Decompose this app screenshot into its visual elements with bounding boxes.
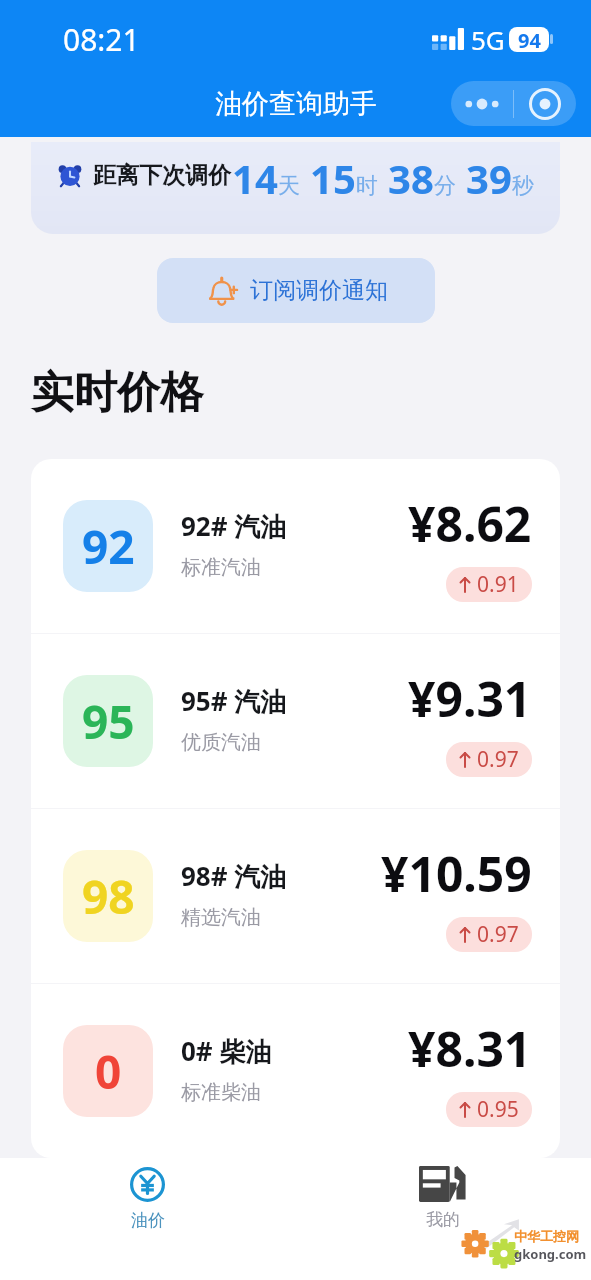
staticText: 39	[466, 151, 512, 205]
staticText: 时	[356, 172, 378, 200]
staticText: 我的	[426, 1209, 460, 1230]
button[interactable]: 0	[31, 984, 560, 1158]
staticText: ¥8.31	[408, 1016, 532, 1081]
button[interactable]: 92	[31, 459, 560, 633]
staticText: 14	[232, 151, 278, 205]
button[interactable]: 油价	[129, 1166, 166, 1231]
staticText: ¥10.59	[381, 841, 532, 906]
staticText: 0	[95, 1040, 122, 1103]
staticText: ¥9.31	[408, 666, 532, 731]
staticText: 98# 汽油	[181, 858, 287, 894]
staticText: 94	[518, 27, 541, 52]
staticText: 0.95	[477, 1095, 519, 1124]
button[interactable]: 95	[31, 634, 560, 808]
staticText: 98	[82, 865, 135, 928]
staticText: 分	[434, 172, 456, 200]
staticText: 优质汽油	[181, 730, 261, 755]
staticText: ¥8.62	[408, 491, 532, 556]
button[interactable]: 订阅调价通知	[157, 258, 435, 323]
staticText: 精选汽油	[181, 905, 261, 930]
staticText: 5G	[471, 22, 505, 57]
staticText: 92	[82, 515, 135, 578]
staticText: 订阅调价通知	[250, 276, 388, 305]
button[interactable]: Close mini program	[514, 81, 576, 126]
staticText: 95# 汽油	[181, 683, 287, 719]
staticText: 油价	[131, 1210, 165, 1231]
staticText: 0.91	[477, 570, 519, 599]
staticText: 标准柴油	[181, 1080, 261, 1105]
staticText: 实时价格	[31, 366, 203, 420]
staticText: 08:21	[63, 19, 140, 60]
staticText: 92# 汽油	[181, 508, 287, 544]
staticText: 95	[82, 690, 135, 753]
button[interactable]: More options	[451, 81, 513, 126]
staticText: 0.97	[477, 920, 519, 949]
staticText: 0.97	[477, 745, 519, 774]
staticText: 中华工控网	[514, 1228, 579, 1244]
staticText: 0# 柴油	[181, 1033, 272, 1069]
staticText: 标准汽油	[181, 555, 261, 580]
button[interactable]: 98	[31, 809, 560, 983]
staticText: 油价查询助手	[215, 87, 377, 121]
button[interactable]: 我的	[419, 1166, 467, 1230]
staticText: 距离下次调价	[93, 161, 231, 190]
staticText: 15	[310, 151, 356, 205]
staticText: 38	[388, 151, 434, 205]
staticText: gkong.com	[514, 1245, 587, 1263]
staticText: 天	[278, 172, 300, 200]
button[interactable]: 距离下次调价	[31, 142, 560, 234]
staticText: 秒	[512, 172, 534, 200]
